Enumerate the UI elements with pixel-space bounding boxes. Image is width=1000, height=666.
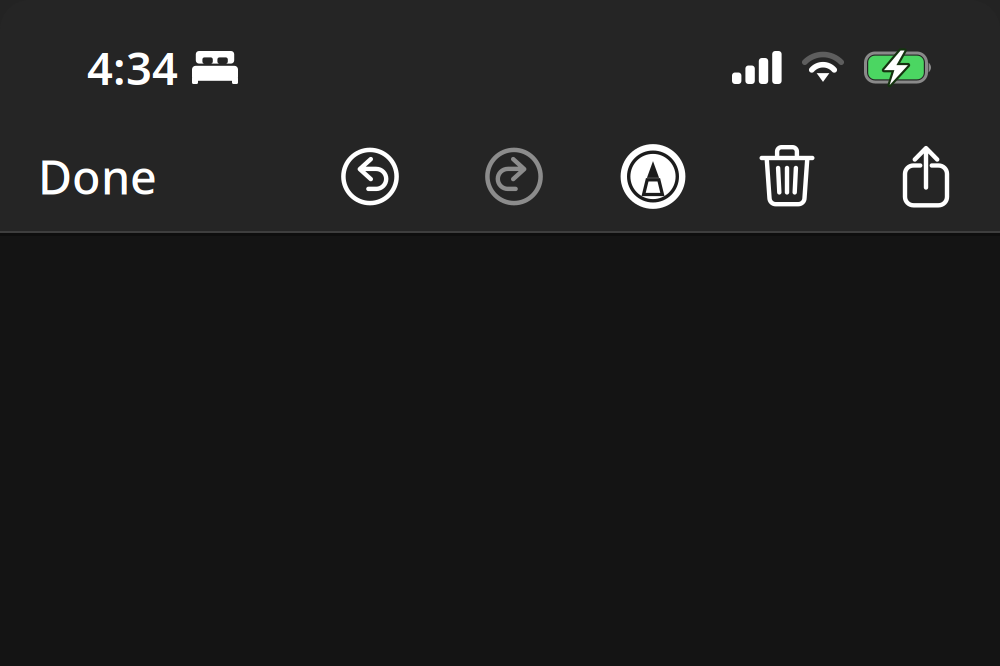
button[interactable]: Delete <box>720 134 854 218</box>
button[interactable]: Undo <box>298 134 442 218</box>
button[interactable]: Share <box>854 134 998 218</box>
staticText: 4:34 <box>87 37 178 98</box>
button[interactable]: Redo <box>442 134 586 218</box>
button[interactable]: Markup <box>586 134 720 218</box>
staticText: Done <box>38 145 157 207</box>
button[interactable]: Done <box>32 131 163 221</box>
